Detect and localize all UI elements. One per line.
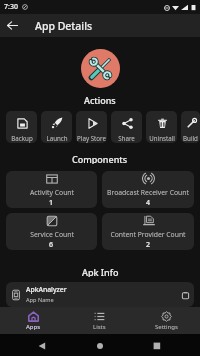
staticText: Activity Count	[30, 188, 74, 197]
staticText: Settings	[155, 323, 178, 331]
button[interactable]: Back	[36, 341, 46, 351]
button[interactable]: Copy	[179, 289, 191, 301]
button[interactable]: Service Count	[6, 213, 97, 250]
button[interactable]: Broadcast Receiver Count	[102, 171, 194, 208]
button[interactable]: Backup	[6, 111, 37, 143]
staticText: Build	[183, 134, 198, 142]
button[interactable]: Back	[0, 14, 25, 37]
staticText: 6	[49, 240, 54, 250]
staticText: ApkAnalyzer	[26, 285, 67, 294]
button[interactable]: ApkAnalyzer	[6, 282, 194, 307]
button[interactable]: Recents	[152, 341, 162, 351]
staticText: Actions	[84, 94, 116, 105]
staticText: Share	[118, 134, 135, 142]
staticText: Components	[72, 153, 128, 164]
staticText: App Name	[26, 296, 54, 304]
staticText: 4	[146, 198, 151, 208]
staticText: Backup	[11, 134, 33, 142]
staticText: Play Store	[77, 134, 106, 142]
button[interactable]: Content Provider Count	[102, 213, 194, 250]
button[interactable]: Uninstall	[146, 111, 177, 143]
staticText: Lists	[93, 323, 106, 331]
staticText: Launch	[46, 134, 68, 142]
button[interactable]: Play Store	[76, 111, 107, 143]
staticText: Apps	[26, 323, 41, 331]
button[interactable]: Home	[95, 341, 105, 351]
staticText: Apk Info	[82, 266, 119, 277]
button[interactable]: Apps	[0, 307, 66, 334]
staticText: 2	[146, 240, 151, 250]
staticText: 1	[49, 198, 54, 208]
staticText: 7:30	[4, 2, 18, 12]
staticText: Broadcast Receiver Count	[107, 188, 189, 197]
staticText: Content Provider Count	[110, 230, 186, 239]
button[interactable]: Build	[181, 111, 200, 143]
button[interactable]: Share	[111, 111, 142, 143]
button[interactable]: Settings	[133, 307, 200, 334]
button[interactable]: Activity Count	[6, 171, 97, 208]
staticText: App Details	[35, 19, 93, 33]
staticText: Uninstall	[149, 134, 175, 142]
button[interactable]: Launch	[41, 111, 72, 143]
button[interactable]: Lists	[66, 307, 133, 334]
staticText: Service Count	[30, 230, 74, 239]
